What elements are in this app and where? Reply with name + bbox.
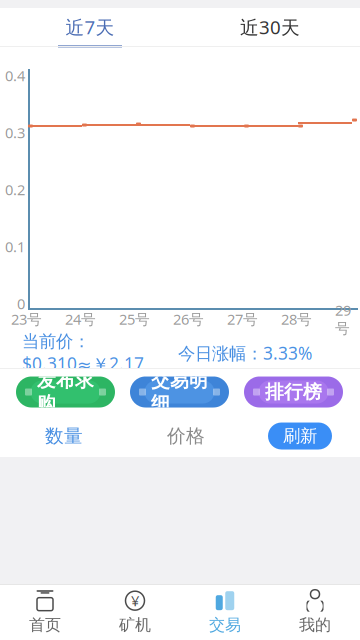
staticText: 首页: [29, 615, 61, 635]
button[interactable]: 排行榜: [244, 376, 343, 407]
staticText: 27号: [227, 309, 258, 329]
staticText: 0.4: [5, 66, 25, 85]
staticText: 矿机: [119, 615, 151, 635]
staticText: 交易明细: [151, 369, 208, 415]
button[interactable]: 价格: [167, 419, 223, 453]
staticText: 今日涨幅：3.33%: [178, 341, 312, 364]
button[interactable]: 我的: [270, 585, 360, 640]
staticText: 0: [17, 294, 25, 313]
staticText: ¥: [131, 591, 139, 610]
staticText: 我的: [299, 615, 331, 635]
staticText: 刷新: [283, 425, 317, 447]
staticText: 28号: [281, 309, 312, 329]
staticText: 发布求购: [37, 369, 94, 415]
button[interactable]: 首页: [0, 585, 90, 640]
button[interactable]: 近7天: [0, 8, 180, 46]
staticText: 0.2: [5, 180, 25, 199]
staticText: 交易: [209, 615, 241, 635]
button[interactable]: ¥: [90, 585, 180, 640]
button[interactable]: 交易: [180, 585, 270, 640]
button[interactable]: 刷新: [268, 422, 332, 449]
staticText: 价格: [167, 424, 205, 447]
button[interactable]: 数量: [45, 419, 101, 453]
staticText: 23号: [11, 309, 42, 329]
staticText: 近7天: [65, 15, 114, 39]
staticText: 数量: [45, 424, 83, 447]
staticText: 当前价：$0.310≈￥2.17: [22, 331, 144, 375]
staticText: 29号: [335, 300, 351, 338]
button[interactable]: 交易明细: [130, 376, 229, 407]
button[interactable]: 发布求购: [16, 376, 115, 407]
staticText: 25号: [119, 309, 150, 329]
staticText: 26号: [173, 309, 204, 329]
staticText: 0.1: [5, 237, 25, 256]
staticText: 近30天: [240, 15, 300, 39]
staticText: 排行榜: [265, 380, 322, 403]
staticText: 24号: [65, 309, 96, 329]
button[interactable]: 近30天: [180, 8, 360, 46]
staticText: 0.3: [5, 123, 25, 142]
